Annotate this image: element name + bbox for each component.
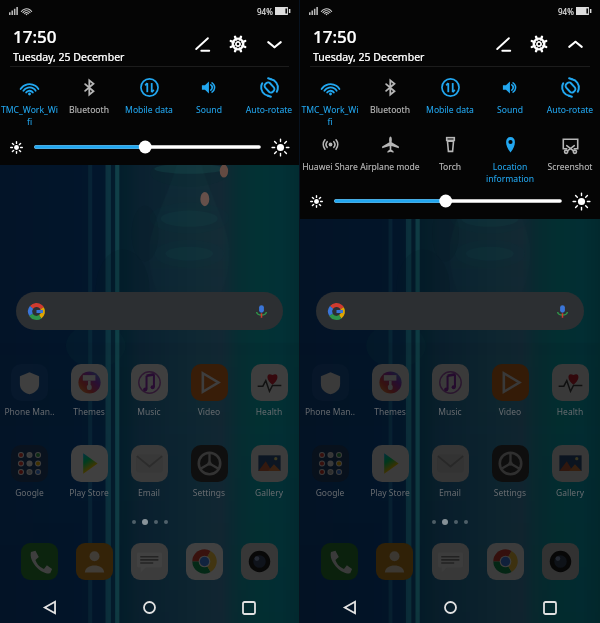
button[interactable]: Airplane mode [360, 135, 420, 173]
button[interactable]: Contacts [376, 543, 413, 580]
staticText: Settings [179, 487, 239, 499]
button[interactable]: Settings [224, 30, 252, 58]
button[interactable]: Auto-rotate [239, 78, 299, 116]
button[interactable]: Mobile data [420, 78, 480, 116]
staticText: Sound [480, 104, 540, 116]
button[interactable]: Email [420, 445, 480, 499]
button[interactable]: Video [480, 364, 540, 418]
button[interactable]: Phone [21, 543, 58, 580]
staticText: Huawei Share [300, 161, 360, 173]
staticText: Health [239, 406, 299, 418]
button[interactable]: Settings [525, 30, 553, 58]
staticText: 94% [257, 6, 273, 17]
button[interactable]: Health [540, 364, 600, 418]
button[interactable]: Mobile data [119, 78, 179, 116]
button[interactable]: Bluetooth [59, 78, 119, 116]
staticText: Tuesday, 25 December [13, 50, 125, 64]
staticText: Phone Man.. [300, 406, 360, 418]
button[interactable]: Settings [480, 445, 540, 499]
staticText: Google [300, 487, 360, 499]
staticText: Bluetooth [360, 104, 420, 116]
button[interactable]: TMC_Work_Wi fi [300, 78, 360, 127]
button[interactable]: Back [0, 592, 99, 623]
staticText: Auto-rotate [239, 104, 299, 116]
staticText: Email [420, 487, 480, 499]
button[interactable]: Chrome [487, 543, 524, 580]
staticText: Auto-rotate [540, 104, 600, 116]
staticText: Play Store [360, 487, 420, 499]
button[interactable]: Camera [241, 543, 278, 580]
staticText: Play Store [59, 487, 119, 499]
staticText: Video [480, 406, 540, 418]
staticText: 94% [558, 6, 574, 17]
staticText: Mobile data [420, 104, 480, 116]
button[interactable]: Chrome [186, 543, 223, 580]
button[interactable]: Huawei Share [300, 135, 360, 173]
button[interactable] [16, 292, 283, 330]
staticText: Bluetooth [59, 104, 119, 116]
staticText: Torch [420, 161, 480, 173]
staticText: Location information [480, 161, 540, 184]
staticText: Health [540, 406, 600, 418]
button[interactable]: Music [119, 364, 179, 418]
button[interactable]: Expand [260, 30, 288, 58]
button[interactable]: Edit [489, 30, 517, 58]
staticText: Themes [360, 406, 420, 418]
button[interactable]: Messages [432, 543, 469, 580]
button[interactable]: Home [99, 592, 199, 623]
staticText: Tuesday, 25 December [313, 50, 425, 64]
button[interactable]: Phone Man.. [0, 364, 59, 418]
staticText: Mobile data [119, 104, 179, 116]
button[interactable]: Play Store [59, 445, 119, 499]
button[interactable]: Auto-rotate [540, 78, 600, 116]
button[interactable]: Sound [480, 78, 540, 116]
staticText: Themes [59, 406, 119, 418]
button[interactable]: TMC_Work_Wi fi [0, 78, 59, 127]
staticText: Sound [179, 104, 239, 116]
staticText: Gallery [239, 487, 299, 499]
button[interactable]: Google [0, 445, 59, 499]
button[interactable]: Recents [500, 592, 600, 623]
button[interactable]: Gallery [540, 445, 600, 499]
staticText: TMC_Work_Wi fi [300, 104, 360, 127]
button[interactable]: Settings [179, 445, 239, 499]
staticText: Airplane mode [360, 161, 420, 173]
button[interactable]: Location information [480, 135, 540, 184]
staticText: Google [0, 487, 59, 499]
button[interactable]: Themes [360, 364, 420, 418]
button[interactable]: Bluetooth [360, 78, 420, 116]
button[interactable]: Camera [542, 543, 579, 580]
button[interactable]: Sound [179, 78, 239, 116]
button[interactable]: Gallery [239, 445, 299, 499]
staticText: 17:50 [13, 25, 57, 48]
button[interactable]: Screenshot [540, 135, 600, 173]
staticText: Screenshot [540, 161, 600, 173]
staticText: Video [179, 406, 239, 418]
button[interactable]: Themes [59, 364, 119, 418]
button[interactable]: Email [119, 445, 179, 499]
button[interactable] [316, 292, 584, 330]
staticText: 17:50 [313, 25, 357, 48]
button[interactable]: Home [400, 592, 500, 623]
button[interactable]: Health [239, 364, 299, 418]
staticText: Email [119, 487, 179, 499]
staticText: Music [420, 406, 480, 418]
staticText: Phone Man.. [0, 406, 59, 418]
button[interactable]: Edit [188, 30, 216, 58]
button[interactable]: Play Store [360, 445, 420, 499]
button[interactable]: Collapse [561, 30, 589, 58]
staticText: Music [119, 406, 179, 418]
button[interactable]: Google [300, 445, 360, 499]
staticText: TMC_Work_Wi fi [0, 104, 59, 127]
staticText: Gallery [540, 487, 600, 499]
button[interactable]: Back [300, 592, 400, 623]
button[interactable]: Phone [321, 543, 358, 580]
staticText: Settings [480, 487, 540, 499]
button[interactable]: Phone Man.. [300, 364, 360, 418]
button[interactable]: Music [420, 364, 480, 418]
button[interactable]: Recents [199, 592, 299, 623]
button[interactable]: Video [179, 364, 239, 418]
button[interactable]: Contacts [76, 543, 113, 580]
button[interactable]: Torch [420, 135, 480, 173]
button[interactable]: Messages [131, 543, 168, 580]
